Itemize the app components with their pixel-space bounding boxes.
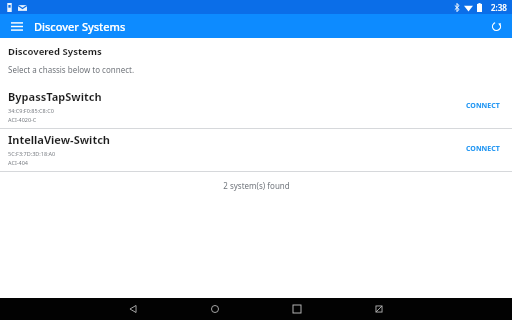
staticText: Discovered Systems	[8, 45, 102, 58]
staticText: Discover Systems	[34, 19, 126, 34]
button[interactable]: Back	[120, 298, 146, 320]
button[interactable]: BypassTapSwitch	[0, 86, 512, 128]
button[interactable]: Screenshot	[366, 298, 392, 320]
button[interactable]: IntellaView-Switch	[0, 129, 512, 171]
staticText: CONNECT	[466, 101, 500, 111]
button[interactable]: Refresh	[480, 14, 512, 38]
button[interactable]: CONNECT	[460, 140, 506, 158]
button[interactable]: Recent apps	[284, 298, 310, 320]
button[interactable]: Open navigation menu	[0, 14, 34, 38]
button[interactable]: CONNECT	[460, 97, 506, 115]
staticText: ACI-404	[8, 159, 28, 166]
staticText: 2 system(s) found	[223, 180, 290, 191]
staticText: IntellaView-Switch	[8, 132, 111, 147]
staticText: BypassTapSwitch	[8, 89, 102, 104]
button[interactable]: Home	[202, 298, 228, 320]
staticText: ACI-4020-C	[8, 116, 37, 123]
staticText: 5C:F3:7D:3D:18:A0	[8, 150, 56, 157]
staticText: 2:38	[491, 2, 507, 13]
staticText: Select a chassis below to connect.	[8, 64, 135, 75]
staticText: 34:C9:F0:85:C8:C0	[8, 107, 54, 114]
staticText: CONNECT	[466, 144, 500, 154]
